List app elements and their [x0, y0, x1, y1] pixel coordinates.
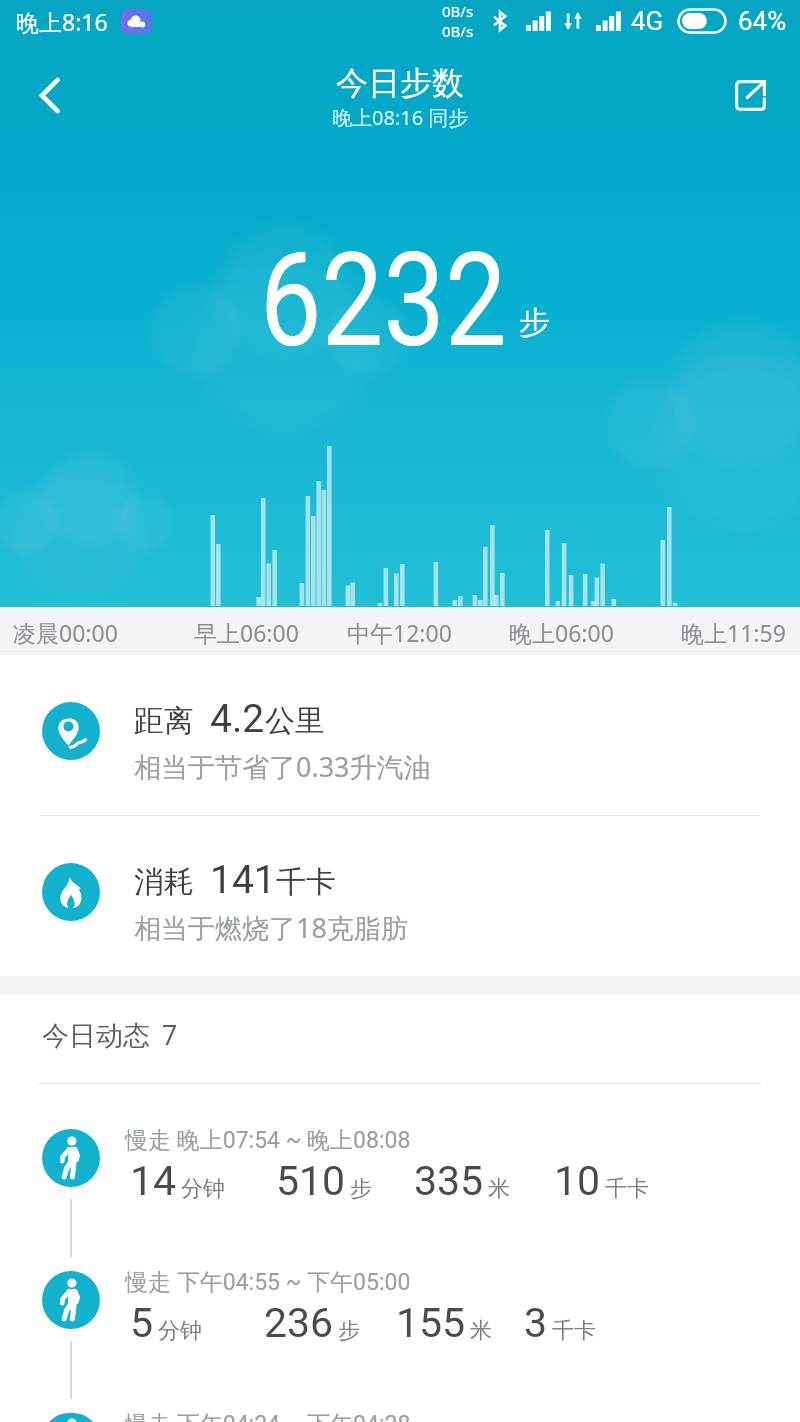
staticText: 3 — [524, 1299, 548, 1345]
staticText: 中午12:00 — [347, 617, 452, 648]
button[interactable]: 距离 — [0, 655, 800, 815]
staticText: 晚上11:59 — [681, 617, 786, 648]
staticText: 凌晨00:00 — [13, 617, 118, 648]
staticText: 晚上08:16 同步 — [332, 104, 469, 131]
staticText: 141 — [210, 857, 276, 901]
staticText: 早上06:00 — [194, 617, 299, 648]
staticText: 步 — [350, 1175, 372, 1203]
button[interactable]: 慢走 下午04:55 ~ 下午05:00 — [0, 1226, 800, 1368]
staticText: 0B/s — [442, 21, 474, 41]
staticText: 155 — [396, 1299, 466, 1345]
staticText: 慢走 下午04:24 ~ 下午04:28 — [125, 1410, 411, 1422]
staticText: 慢走 晚上07:54 ~ 晚上08:08 — [125, 1126, 411, 1155]
staticText: 消耗 — [134, 860, 202, 901]
button[interactable]: 消耗 — [0, 816, 800, 976]
staticText: 分钟 — [181, 1175, 225, 1203]
staticText: 4G — [631, 6, 664, 36]
staticText: 千卡 — [605, 1175, 649, 1203]
staticText: 相当于燃烧了18克脂肪 — [134, 909, 408, 946]
staticText: 7 — [162, 1020, 178, 1052]
staticText: 距离 — [134, 699, 202, 740]
staticText: 64% — [738, 6, 787, 36]
staticText: 10 — [554, 1157, 601, 1203]
staticText: 0B/s — [442, 1, 474, 21]
button[interactable]: 慢走 晚上07:54 ~ 晚上08:08 — [0, 1084, 800, 1226]
staticText: 今日动态 — [42, 1019, 150, 1053]
staticText: 分钟 — [158, 1317, 202, 1345]
staticText: 4.2 — [210, 696, 265, 740]
staticText: 相当于节省了0.33升汽油 — [134, 748, 431, 785]
staticText: 510 — [276, 1157, 346, 1203]
staticText: 14 — [130, 1157, 177, 1203]
button[interactable]: 今日动态 — [0, 994, 800, 1084]
staticText: 今日步数 — [336, 63, 464, 103]
staticText: 千卡 — [276, 863, 336, 901]
button[interactable]: Back — [14, 59, 86, 131]
staticText: 米 — [488, 1175, 510, 1203]
staticText: 慢走 下午04:55 ~ 下午05:00 — [125, 1268, 411, 1297]
staticText: 米 — [470, 1317, 492, 1345]
button[interactable]: 慢走 下午04:24 ~ 下午04:28 — [0, 1368, 800, 1422]
staticText: 公里 — [265, 702, 325, 740]
staticText: 236 — [264, 1299, 334, 1345]
staticText: 晚上8:16 — [16, 6, 108, 37]
staticText: 晚上06:00 — [509, 617, 614, 648]
staticText: 步 — [338, 1317, 360, 1345]
staticText: 步 — [519, 303, 550, 342]
staticText: 6232 — [260, 224, 507, 376]
staticText: 千卡 — [552, 1317, 596, 1345]
button[interactable]: Share — [715, 60, 785, 130]
staticText: 335 — [414, 1157, 484, 1203]
staticText: 5 — [130, 1299, 154, 1345]
